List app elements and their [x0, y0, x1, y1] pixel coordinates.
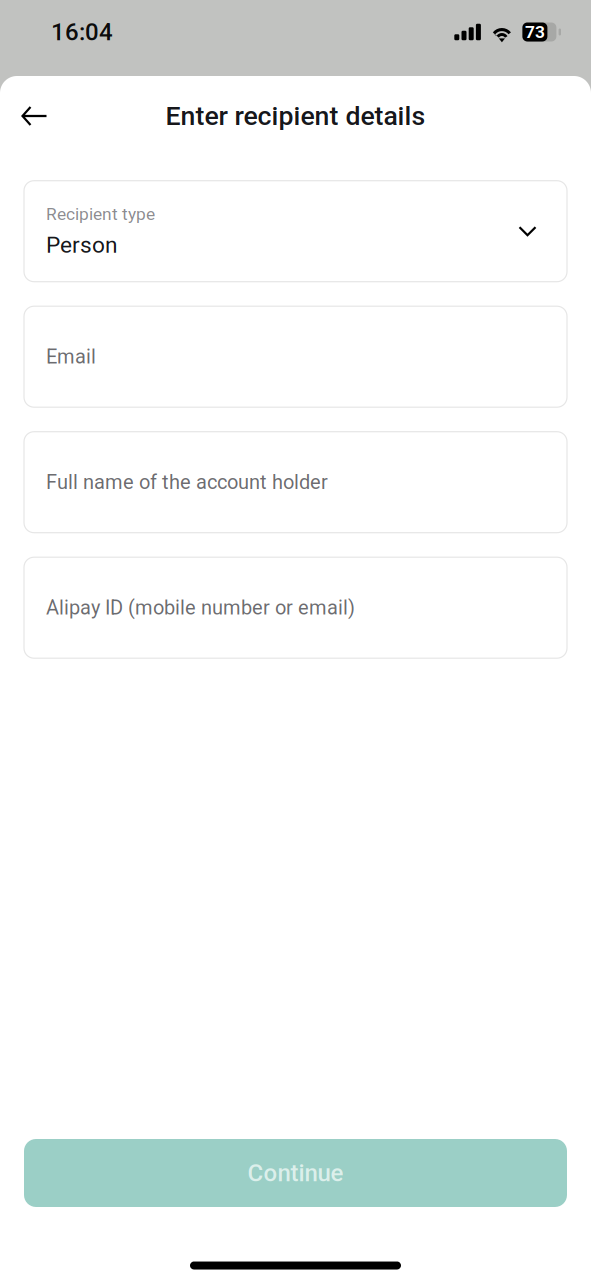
staticText: Continue — [247, 1159, 343, 1187]
button[interactable]: Recipient type — [24, 181, 567, 282]
button[interactable]: Back — [0, 88, 69, 144]
staticText: Email — [46, 345, 96, 368]
staticText: Recipient type — [46, 204, 155, 224]
staticText: Enter recipient details — [165, 100, 425, 132]
staticText: Full name of the account holder — [46, 470, 328, 494]
staticText: 73 — [525, 22, 545, 42]
staticText: 16:04 — [51, 18, 113, 46]
staticText: Person — [46, 232, 118, 258]
button[interactable]: Continue — [24, 1139, 567, 1207]
staticText: Alipay ID (mobile number or email) — [46, 596, 355, 619]
